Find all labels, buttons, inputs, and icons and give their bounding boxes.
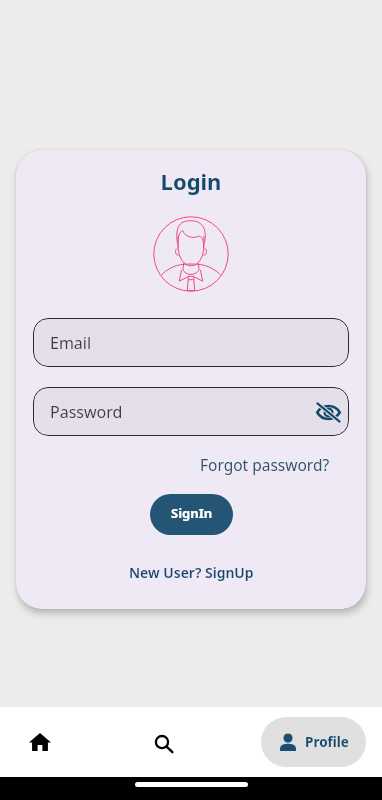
button[interactable]: Profile (261, 717, 366, 767)
button[interactable]: Home (16, 707, 64, 777)
button[interactable]: SignIn (150, 494, 233, 535)
button[interactable]: Email (33, 318, 349, 367)
staticText: Email (50, 332, 92, 354)
staticText: Login (16, 166, 366, 196)
button[interactable]: Toggle password visibility (314, 399, 342, 425)
staticText: Profile (305, 733, 349, 751)
button[interactable]: Forgot password? (200, 454, 330, 475)
button[interactable]: Search (140, 710, 188, 780)
staticText: SignIn (171, 504, 213, 522)
staticText: Password (50, 401, 123, 423)
button[interactable]: New User? SignUp (129, 563, 254, 582)
button[interactable]: Password (33, 387, 349, 436)
